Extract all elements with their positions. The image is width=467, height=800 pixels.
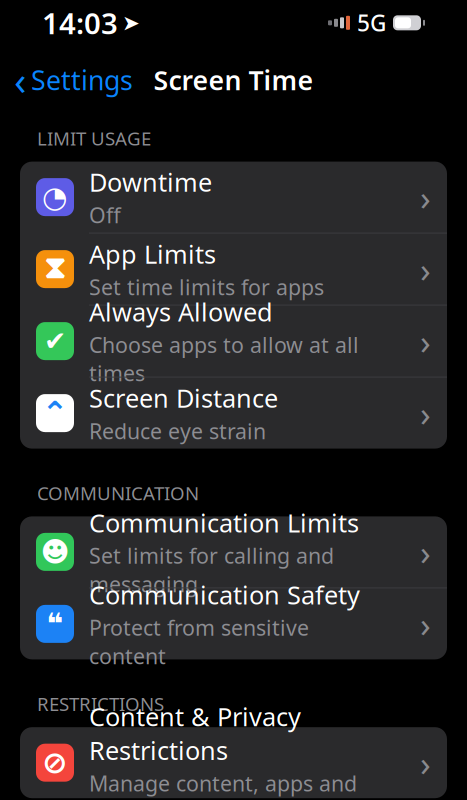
staticText: › [420, 740, 431, 786]
button[interactable]: ⊘ [20, 727, 447, 798]
button[interactable]: ☻ [20, 516, 447, 588]
staticText: ➤ [122, 11, 140, 35]
staticText: Manage content, apps and settings [89, 769, 357, 800]
staticText: Reduce eye strain [89, 417, 266, 445]
staticText: Choose apps to allow at all times [89, 331, 359, 387]
button[interactable]: ◔ [20, 162, 447, 234]
staticText: ☻ [40, 536, 69, 568]
staticText: Settings [31, 62, 133, 97]
staticText: Protect from sensitive content [89, 613, 309, 670]
staticText: Screen Distance [89, 381, 278, 415]
staticText: COMMUNICATION [37, 481, 199, 505]
staticText: Set limits for calling and messaging [89, 541, 334, 598]
staticText: Always Allowed [89, 295, 273, 329]
staticText: › [420, 601, 431, 647]
staticText: › [420, 246, 431, 292]
staticText: Communication Safety [89, 578, 360, 611]
staticText: ✔ [44, 326, 66, 356]
staticText: LIMIT USAGE [37, 126, 151, 151]
staticText: › [420, 174, 431, 220]
button[interactable]: ⌃ [20, 378, 447, 449]
staticText: 5G [357, 8, 386, 38]
staticText: RESTRICTIONS [37, 691, 164, 716]
staticText: Set time limits for apps [89, 273, 324, 301]
staticText: ◔ [42, 180, 68, 214]
staticText: › [420, 318, 431, 364]
staticText: ⌃ [41, 395, 68, 431]
staticText: ❝ [46, 607, 63, 640]
staticText: Communication Limits [89, 506, 359, 539]
button[interactable]: ⧗ [20, 234, 447, 306]
staticText: Off [89, 201, 121, 229]
staticText: Screen Time [153, 62, 313, 97]
staticText: Downtime [89, 165, 212, 199]
staticText: › [420, 390, 431, 436]
staticText: ⧗ [44, 254, 66, 284]
staticText: App Limits [89, 237, 216, 271]
staticText: › [420, 529, 431, 575]
staticText: ‹ [14, 53, 26, 106]
button[interactable]: ❝ [20, 588, 447, 659]
staticText: 14:03 [42, 3, 118, 42]
button[interactable]: ‹ [0, 47, 147, 112]
button[interactable]: ✔ [20, 306, 447, 378]
staticText: Content & Privacy Restrictions [89, 700, 301, 767]
staticText: ⊘ [42, 745, 68, 780]
